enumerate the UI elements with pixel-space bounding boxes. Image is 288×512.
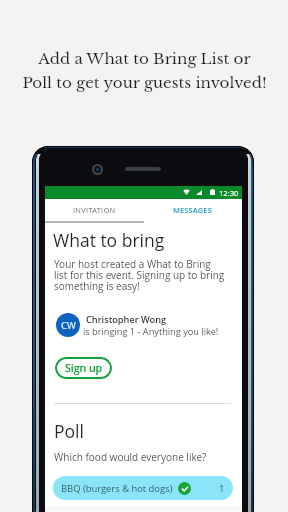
staticText: Sign up — [65, 361, 103, 375]
staticText: BBQ (burgers & hot dogs) — [61, 482, 173, 495]
staticText: MESSAGES — [173, 205, 212, 215]
staticText: is bringing 1 - Anything you like! — [83, 325, 219, 338]
staticText: 1 — [219, 482, 225, 495]
staticText: Which food would everyone like? — [54, 450, 207, 464]
staticText: Your host created a What to Bring list f… — [54, 257, 225, 293]
button[interactable]: MESSAGES — [143, 199, 242, 221]
button[interactable]: Sign up — [55, 357, 112, 379]
staticText: Add a What to Bring List or Poll to get … — [22, 49, 267, 92]
staticText: CW — [61, 319, 76, 332]
staticText: 12:30 — [219, 188, 239, 198]
button[interactable]: BBQ (burgers & hot dogs) — [53, 476, 233, 500]
staticText: INVITATION — [73, 205, 116, 215]
staticText: Poll — [54, 419, 84, 443]
staticText: What to bring — [53, 228, 165, 252]
staticText: Christopher Wong — [86, 313, 167, 326]
button[interactable]: INVITATION — [45, 199, 143, 221]
